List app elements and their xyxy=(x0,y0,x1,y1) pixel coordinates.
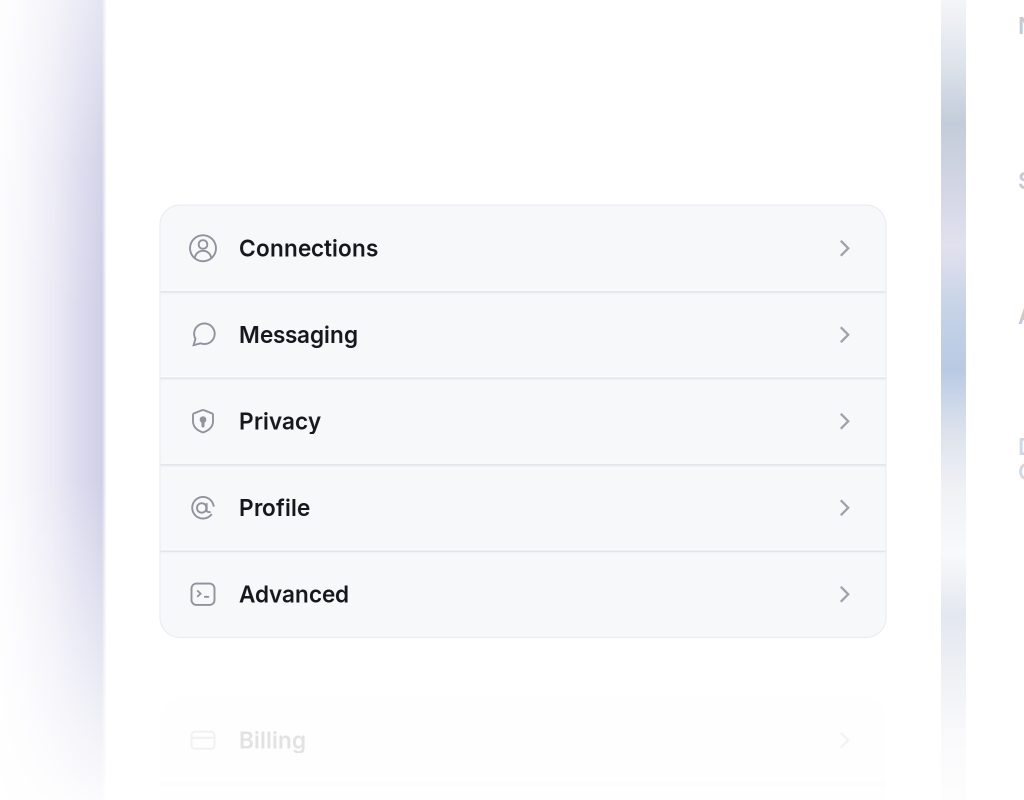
button[interactable]: Messaging xyxy=(160,291,886,378)
staticText: Content xyxy=(1018,458,1024,485)
staticText: Billing xyxy=(239,726,306,754)
button[interactable]: Advanced xyxy=(160,551,886,637)
staticText: Connections xyxy=(239,234,378,262)
staticText: Privacy xyxy=(239,407,321,435)
staticText: Messaging xyxy=(239,321,358,348)
staticText: Display xyxy=(1018,433,1024,460)
button[interactable]: Profile xyxy=(160,464,886,551)
staticText: Notifications xyxy=(1018,12,1024,39)
button[interactable]: Connections xyxy=(160,205,886,291)
staticText: Sounds xyxy=(1018,167,1024,194)
staticText: Advanced xyxy=(239,580,349,608)
staticText: Profile xyxy=(239,494,310,521)
button[interactable]: Privacy xyxy=(160,378,886,464)
staticText: Appearance xyxy=(1018,302,1024,329)
